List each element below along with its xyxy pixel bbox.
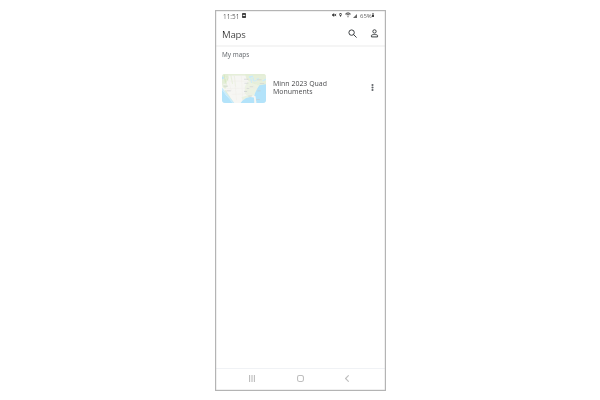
button[interactable]: Minn 2023 Quad Monuments [215, 70, 386, 106]
button[interactable]: More options [365, 76, 379, 98]
staticText: Minn 2023 Quad Monuments [273, 79, 328, 96]
button[interactable]: Back [334, 367, 360, 389]
staticText: My maps [222, 50, 250, 59]
staticText: 65% [360, 12, 372, 20]
button[interactable]: Home [287, 367, 313, 389]
button[interactable]: Account [366, 25, 382, 41]
staticText: Maps [222, 28, 246, 41]
button[interactable]: Search [344, 25, 360, 41]
staticText: 11:51 [223, 12, 240, 21]
button[interactable]: Recent apps [239, 367, 265, 389]
